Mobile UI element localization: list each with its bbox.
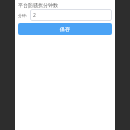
staticText: 分钟: xyxy=(18,13,28,18)
button[interactable]: 保存 xyxy=(18,23,112,35)
staticText: 2 xyxy=(33,12,36,19)
staticText: 保存 xyxy=(60,26,70,32)
staticText: 平台防骚扰分钟数 xyxy=(18,2,58,8)
button[interactable]: 2 xyxy=(30,9,112,21)
